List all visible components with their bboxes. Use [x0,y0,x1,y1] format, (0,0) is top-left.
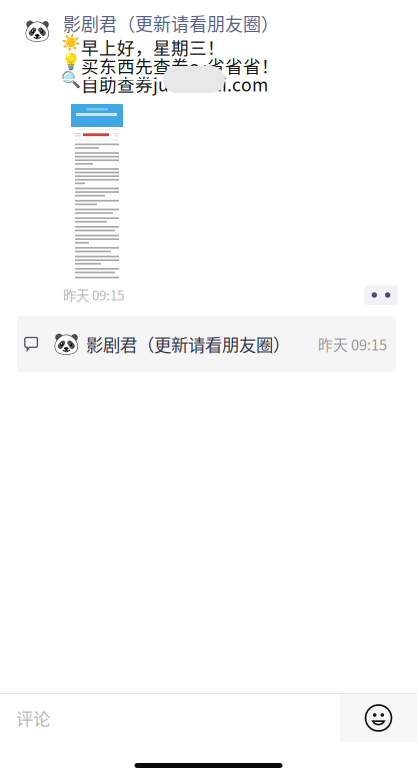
staticText: 早上好，星期三！ [81,34,225,59]
staticText: 💡 [61,52,81,71]
staticText: 影剧君（更新请看朋友圈） [86,331,290,357]
button[interactable]: Emoji keyboard [340,694,417,742]
staticText: 昨天 09:15 [63,285,124,304]
staticText: 🐼 [53,331,80,356]
staticText: 昨天 09:15 [318,333,387,355]
staticText: 影剧君（更新请看朋友圈） [63,10,279,36]
staticText: 自助查券ju .i.com [81,71,268,96]
staticText: 评论 [16,705,50,731]
button[interactable]: 🐼 [17,316,396,372]
staticText: 🐼 [24,18,51,43]
staticText: ☀️ [61,34,81,52]
button[interactable]: 评论 [0,694,340,742]
staticText: 🔍 [61,71,81,89]
staticText: 买东西先查券～省省省！ [81,52,279,78]
button[interactable]: More actions [364,285,398,305]
